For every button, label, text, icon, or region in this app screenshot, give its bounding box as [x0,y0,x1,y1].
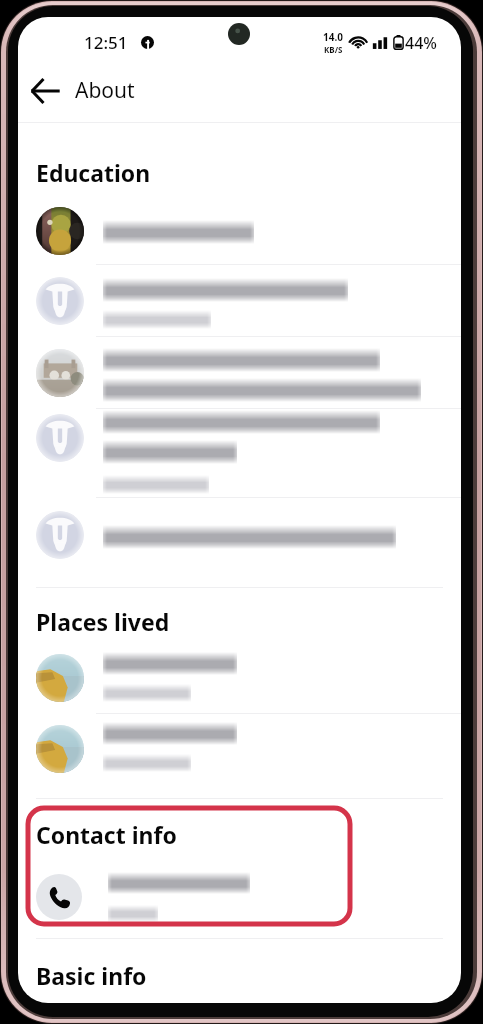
button[interactable] [36,856,461,938]
button[interactable] [18,265,461,337]
button[interactable] [18,197,461,265]
staticText: Contact info [36,819,177,850]
button[interactable] [18,337,461,409]
staticText: 44% [405,32,437,54]
staticText: About [75,76,135,105]
button[interactable] [18,498,461,587]
staticText: Basic info [36,960,147,991]
button[interactable] [18,409,461,497]
staticText: KB/S [324,44,343,55]
staticText: Education [36,157,151,188]
button[interactable] [18,714,461,798]
button[interactable] [18,645,461,714]
staticText: 14.0 [323,30,343,44]
staticText: Places lived [36,606,170,637]
button[interactable]: Back [22,68,68,114]
staticText: 12:51 [84,31,128,54]
